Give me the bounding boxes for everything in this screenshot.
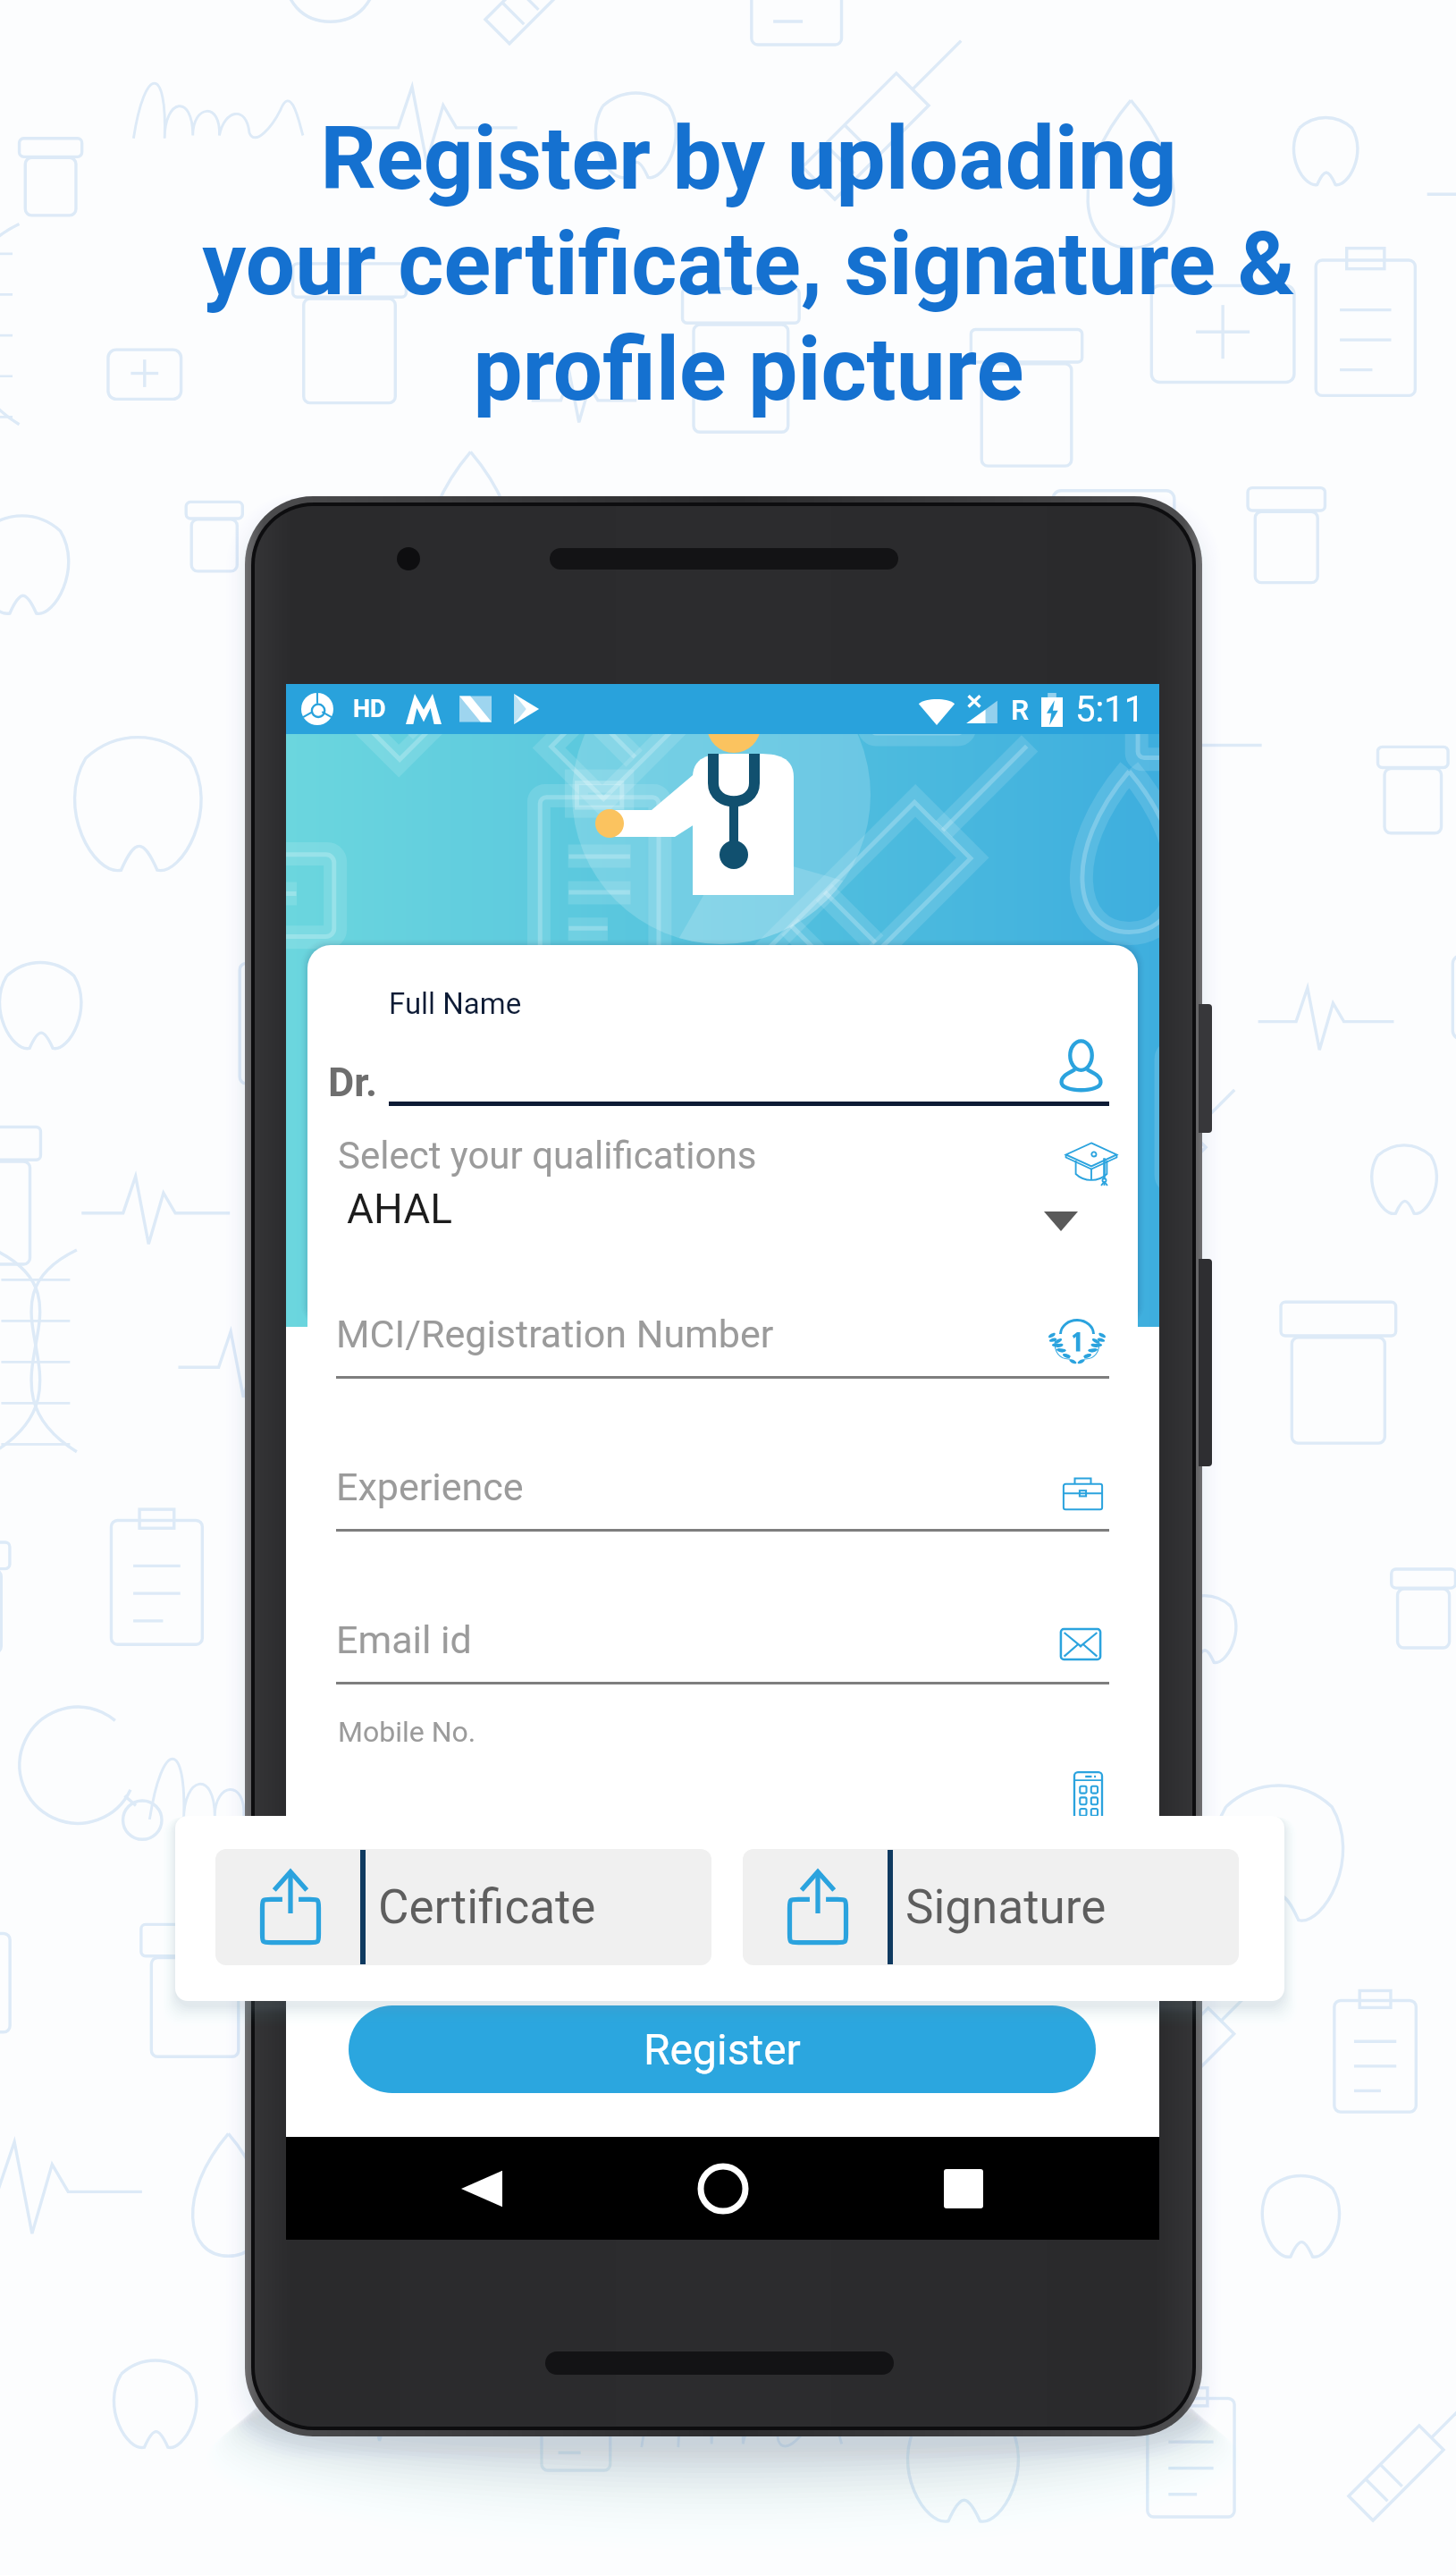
staticText: Register by uploading your certificate, …	[202, 107, 1295, 421]
staticText: Experience	[336, 1465, 524, 1509]
staticText: Select your qualifications	[338, 1134, 757, 1178]
button[interactable]: Certificate	[215, 1849, 711, 1965]
staticText: Register	[644, 2024, 801, 2074]
staticText: Signature	[905, 1879, 1107, 1935]
staticText: Mobile No.	[338, 1715, 476, 1749]
button[interactable]: Home	[678, 2144, 768, 2233]
button[interactable]: Recents	[919, 2144, 1008, 2233]
staticText: R	[1011, 693, 1029, 727]
staticText: Dr.	[328, 1059, 377, 1106]
staticText: AHAL	[347, 1185, 453, 1233]
staticText: Certificate	[378, 1879, 596, 1935]
staticText: HD	[353, 695, 386, 723]
button[interactable]: Signature	[743, 1849, 1239, 1965]
button[interactable]: Back	[437, 2144, 526, 2233]
staticText: MCI/Registration Number	[336, 1312, 774, 1356]
button[interactable]: Register	[349, 2005, 1096, 2093]
staticText: Email id	[336, 1617, 472, 1662]
staticText: Full Name	[389, 986, 522, 1021]
staticText: 5:11	[1075, 688, 1145, 730]
